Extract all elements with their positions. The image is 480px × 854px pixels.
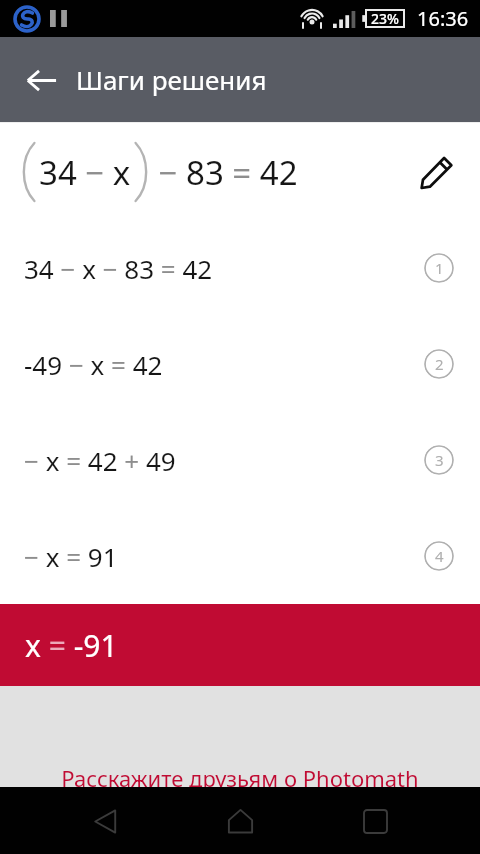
button[interactable]: Back: [75, 791, 135, 851]
button[interactable]: Back: [14, 53, 68, 107]
staticText: − 83 = 42: [150, 150, 298, 195]
staticText: 16:36: [417, 5, 469, 32]
button[interactable]: 34 − x − 83 = 42: [0, 220, 480, 316]
button[interactable]: Расскажите друзьям о Photomath: [0, 686, 480, 787]
button[interactable]: 3: [424, 445, 454, 475]
staticText: 23%: [371, 9, 399, 28]
button[interactable]: Recent apps: [345, 791, 405, 851]
staticText: − x = 91: [24, 539, 118, 574]
staticText: Расскажите друзьям о Photomath: [61, 763, 419, 793]
staticText: − x = 42 + 49: [24, 443, 176, 478]
staticText: 34 − x − 83 = 42: [24, 251, 213, 286]
button[interactable]: − x = 91: [0, 508, 480, 604]
staticText: 4: [435, 546, 444, 566]
button[interactable]: 2: [424, 349, 454, 379]
staticText: 1: [435, 258, 444, 278]
staticText: Шаги решения: [76, 62, 267, 97]
button[interactable]: Home: [210, 791, 270, 851]
staticText: 3: [435, 450, 444, 470]
button[interactable]: Edit: [410, 146, 462, 198]
staticText: x = -91: [25, 625, 118, 666]
button[interactable]: 1: [424, 253, 454, 283]
button[interactable]: 34 − x: [0, 123, 480, 220]
button[interactable]: -49 − x = 42: [0, 316, 480, 412]
button[interactable]: x = -91: [0, 604, 480, 686]
staticText: 2: [435, 354, 444, 374]
button[interactable]: 4: [424, 541, 454, 571]
staticText: 34 − x: [39, 150, 131, 195]
staticText: -49 − x = 42: [24, 347, 163, 382]
button[interactable]: − x = 42 + 49: [0, 412, 480, 508]
